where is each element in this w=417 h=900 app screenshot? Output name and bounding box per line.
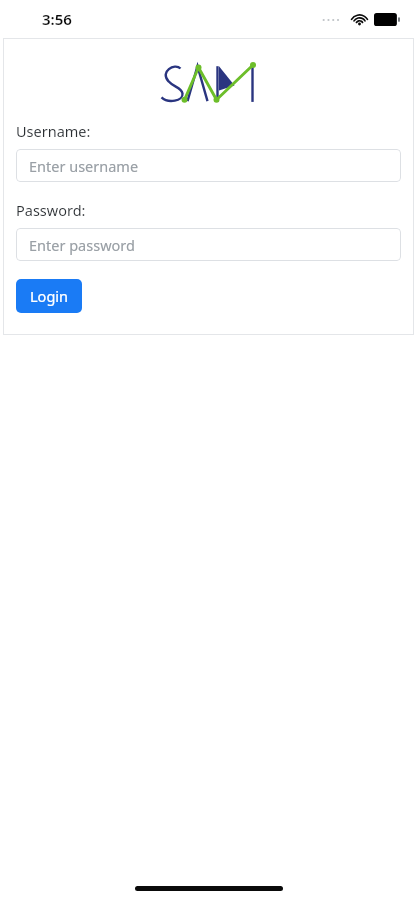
staticText: 3:56 [42, 9, 72, 29]
button[interactable]: Enter password [16, 228, 401, 261]
staticText: Login [30, 286, 68, 306]
button[interactable]: Enter username [16, 149, 401, 182]
button[interactable]: Login [16, 279, 82, 313]
staticText: Username: [16, 121, 91, 141]
staticText: Password: [16, 200, 86, 220]
staticText: Enter username [29, 156, 139, 176]
staticText: Enter password [29, 235, 135, 255]
